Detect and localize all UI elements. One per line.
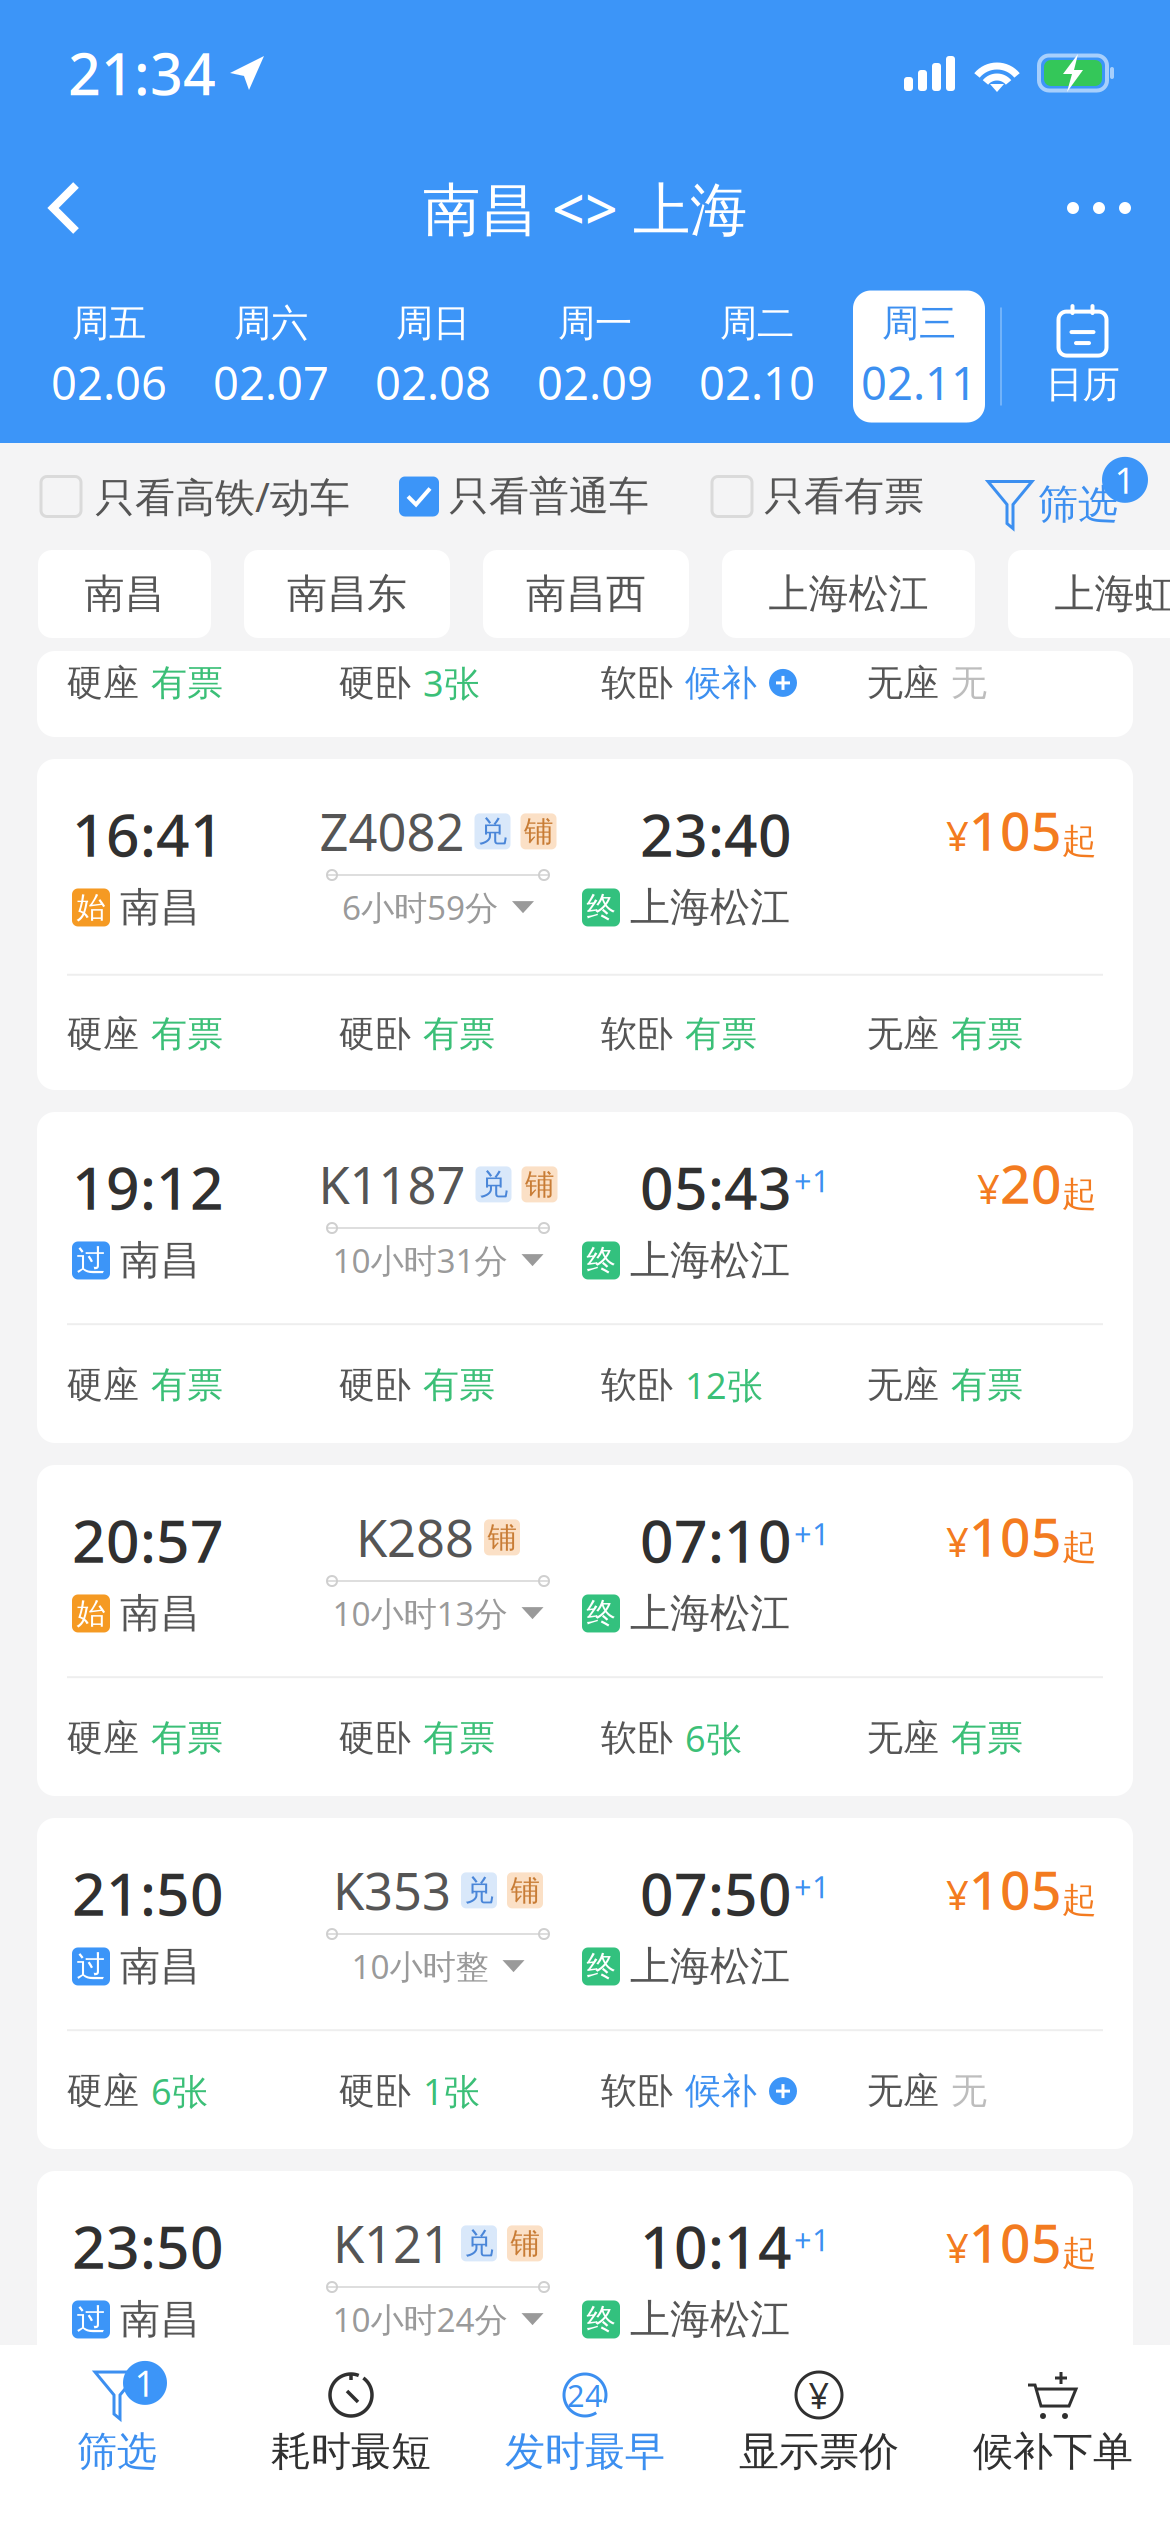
staticText: 3张 <box>423 659 480 707</box>
staticText: 105 <box>969 1501 1062 1571</box>
button[interactable]: 只看普通车 <box>399 472 712 521</box>
staticText: 有票 <box>151 1716 223 1760</box>
staticText: 硬卧 <box>339 661 411 705</box>
button[interactable]: 周五 <box>28 290 190 422</box>
staticText: 周五 <box>72 300 146 346</box>
staticText: ¥ <box>977 1162 1000 1215</box>
staticText: 上海松江 <box>630 1589 790 1638</box>
staticText: 只看普通车 <box>449 472 649 521</box>
button[interactable]: 返回 <box>20 168 110 248</box>
staticText: 10:14 <box>640 2207 792 2285</box>
staticText: 铺 <box>525 1166 554 1202</box>
button[interactable]: 耗时最短 <box>234 2345 468 2532</box>
staticText: ¥ <box>946 1515 969 1568</box>
button[interactable]: 硬座 <box>37 651 1133 737</box>
staticText: 南昌 <> 上海 <box>423 170 747 246</box>
staticText: 21:50 <box>72 1854 224 1932</box>
staticText: 只看有票 <box>764 472 924 521</box>
staticText: 10小时13分 <box>332 1591 507 1635</box>
button[interactable]: 上海虹桥 <box>1008 550 1170 638</box>
staticText: 上海松江 <box>630 2295 790 2344</box>
staticText: 发时最早 <box>505 2427 665 2476</box>
button[interactable]: 上海松江 <box>722 550 975 638</box>
staticText: 终 <box>586 1948 615 1984</box>
button[interactable]: 23:50 <box>37 2171 1133 2371</box>
staticText: 兑 <box>464 1872 493 1908</box>
button[interactable]: 20:57 <box>37 1465 1133 1796</box>
staticText: 20:57 <box>72 1501 224 1579</box>
staticText: 铺 <box>487 1519 516 1555</box>
staticText: +1 <box>794 2219 830 2260</box>
staticText: 1 <box>134 2359 155 2407</box>
staticText: 02.11 <box>861 352 977 412</box>
staticText: K1187 <box>318 1151 465 1218</box>
button[interactable]: 周六 <box>190 290 352 422</box>
button[interactable]: 16:41 <box>37 759 1133 1090</box>
staticText: 上海松江 <box>630 1942 790 1991</box>
button[interactable]: 1 <box>0 2345 234 2532</box>
staticText: 10小时整 <box>351 1944 488 1988</box>
button[interactable]: 候补下单 <box>936 2345 1170 2532</box>
staticText: 12张 <box>685 1361 763 1409</box>
staticText: 候补 <box>685 2069 757 2113</box>
staticText: 南昌 <box>120 883 200 932</box>
staticText: 23:50 <box>72 2207 224 2285</box>
staticText: 19:12 <box>72 1148 224 1226</box>
button[interactable]: 19:12 <box>37 1112 1133 1443</box>
button[interactable]: 周日 <box>352 290 514 422</box>
staticText: ¥ <box>946 2221 969 2274</box>
staticText: 上海松江 <box>630 1236 790 1285</box>
staticText: 硬座 <box>67 661 139 705</box>
staticText: 有票 <box>685 1012 757 1056</box>
staticText: 07:10 <box>640 1501 792 1579</box>
button[interactable]: 南昌西 <box>483 550 689 638</box>
staticText: 周一 <box>558 300 632 346</box>
staticText: 耗时最短 <box>271 2427 431 2476</box>
staticText: 硬座 <box>67 1716 139 1760</box>
staticText: 铺 <box>510 1872 539 1908</box>
button[interactable]: 24 <box>468 2345 702 2532</box>
staticText: 软卧 <box>601 1012 673 1056</box>
button[interactable]: 筛选 <box>994 456 1148 537</box>
staticText: 始 <box>76 1595 105 1631</box>
staticText: 上海虹桥 <box>1054 569 1170 618</box>
button[interactable]: 只看高铁/动车 <box>41 470 399 523</box>
staticText: 无座 <box>867 1716 939 1760</box>
button[interactable]: 更多 <box>1054 168 1144 248</box>
staticText: K288 <box>356 1504 474 1571</box>
staticText: 1 <box>1114 456 1135 504</box>
button[interactable]: 周二 <box>676 290 838 422</box>
staticText: 硬座 <box>67 1012 139 1056</box>
button[interactable]: 南昌东 <box>244 550 450 638</box>
staticText: 02.08 <box>375 352 491 412</box>
staticText: 10小时31分 <box>332 1238 507 1282</box>
staticText: 候补下单 <box>973 2427 1133 2476</box>
staticText: 6小时59分 <box>342 885 498 929</box>
staticText: 02.06 <box>51 352 167 412</box>
staticText: 21:34 <box>68 35 216 111</box>
button[interactable]: 只看有票 <box>712 472 927 521</box>
staticText: 始 <box>76 889 105 925</box>
button[interactable]: 21:50 <box>37 1818 1133 2149</box>
button[interactable]: 日历 <box>1002 290 1163 422</box>
staticText: 软卧 <box>601 1716 673 1760</box>
staticText: 有票 <box>951 1363 1023 1407</box>
button[interactable]: 南昌 <box>38 550 211 638</box>
button[interactable]: ¥ <box>702 2345 936 2532</box>
staticText: 南昌西 <box>526 569 646 618</box>
button[interactable]: 周一 <box>514 290 676 422</box>
staticText: 筛选 <box>1038 480 1118 529</box>
staticText: +1 <box>794 1866 830 1907</box>
staticText: 上海松江 <box>768 569 928 618</box>
staticText: 105 <box>969 2207 1062 2277</box>
staticText: 候补 <box>685 661 757 705</box>
staticText: 起 <box>1062 2232 1097 2274</box>
button[interactable]: 周三 <box>838 290 1000 422</box>
staticText: 105 <box>969 795 1062 865</box>
staticText: K353 <box>333 1857 451 1924</box>
staticText: 周日 <box>396 300 470 346</box>
staticText: 有票 <box>423 1363 495 1407</box>
staticText: 兑 <box>478 813 507 849</box>
staticText: 铺 <box>510 2225 539 2261</box>
staticText: 终 <box>586 1242 615 1278</box>
